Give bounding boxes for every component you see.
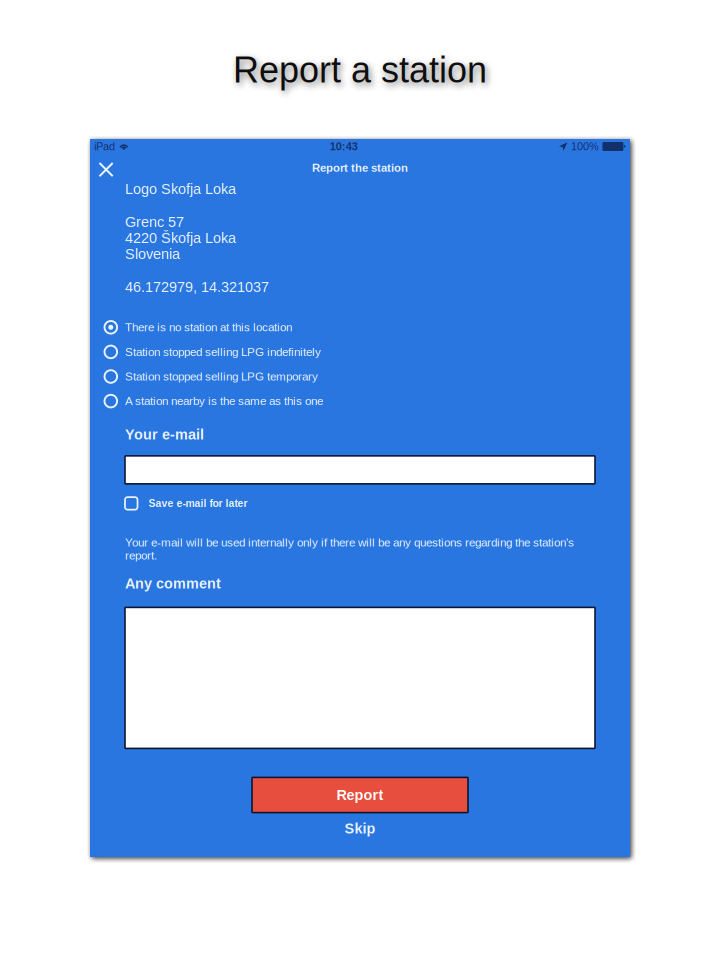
staticText: Logo Skofja Loka: [125, 181, 236, 197]
staticText: Report the station: [312, 161, 408, 174]
staticText: Your e-mail: [125, 426, 204, 442]
staticText: Save e-mail for later: [148, 498, 247, 509]
staticText: iPad: [94, 140, 115, 153]
button[interactable]: Skip: [344, 821, 375, 837]
staticText: There is no station at this location: [125, 321, 292, 334]
button[interactable]: Station stopped selling LPG indefinitely: [103, 340, 595, 364]
staticText: A station nearby is the same as this one: [125, 395, 323, 408]
staticText: Your e-mail will be used internally only…: [125, 536, 574, 562]
staticText: Report a station: [233, 50, 487, 90]
staticText: Report: [336, 787, 383, 803]
staticText: Any comment: [125, 575, 221, 591]
staticText: 10:43: [330, 140, 358, 153]
staticText: 4220 Škofja Loka: [125, 230, 236, 246]
staticText: Station stopped selling LPG indefinitely: [125, 345, 321, 358]
staticText: Slovenia: [125, 246, 180, 262]
button[interactable]: Report: [252, 777, 468, 813]
button[interactable]: Save e-mail for later: [125, 496, 595, 510]
button[interactable]: Close: [94, 158, 118, 181]
staticText: Skip: [344, 821, 375, 837]
staticText: 100%: [571, 140, 599, 153]
staticText: Station stopped selling LPG temporary: [125, 370, 318, 383]
button[interactable]: A station nearby is the same as this one: [103, 389, 595, 413]
button[interactable]: There is no station at this location: [103, 315, 595, 340]
staticText: 46.172979, 14.321037: [125, 279, 269, 295]
button[interactable]: Station stopped selling LPG temporary: [103, 364, 595, 389]
staticText: Grenc 57: [125, 214, 184, 230]
